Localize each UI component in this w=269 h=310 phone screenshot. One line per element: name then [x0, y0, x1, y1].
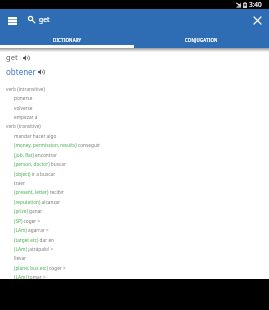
staticText: ponerse [14, 95, 33, 101]
button[interactable]: Search [24, 12, 38, 26]
button[interactable]: CONJUGATION [134, 31, 269, 48]
button[interactable]: (object) ir a buscar [0, 171, 269, 180]
button[interactable]: (plane, bus etc) coger > [0, 265, 269, 274]
button[interactable]: (LAm) agarrar > [0, 227, 269, 236]
button[interactable]: mandar hacer algo [0, 133, 269, 142]
staticText: (object) ir a buscar [14, 171, 56, 177]
button[interactable]: (reputation) alcanzar [0, 199, 269, 208]
staticText: (LAm) tomar > [14, 274, 46, 280]
button[interactable]: (money, permission, results) conseguir [0, 142, 269, 151]
staticText: verb (intransitive) [6, 86, 45, 92]
staticText: (reputation) alcanzar [14, 199, 61, 205]
staticText: mandar hacer algo [14, 133, 57, 139]
button[interactable]: (job, flat) encontrar [0, 152, 269, 161]
button[interactable]: (LAm) tomar > [0, 274, 269, 283]
button[interactable]: Clear search [249, 12, 265, 28]
staticText: get [39, 15, 50, 24]
button[interactable]: (LAm) ¡atrápalo! > [0, 246, 269, 255]
staticText: (prize) ganar [14, 208, 43, 214]
button[interactable]: (person, doctor) buscar [0, 161, 269, 170]
staticText: (plane, bus etc) coger > [14, 265, 66, 271]
staticText: verb (transitive) [6, 123, 41, 129]
staticText: CONJUGATION [185, 37, 218, 43]
staticText: (LAm) ¡atrápalo! > [14, 246, 54, 252]
staticText: (target etc) dar en [14, 237, 54, 243]
button[interactable]: DICTIONARY [0, 31, 134, 48]
button[interactable]: verb (intransitive) [0, 86, 269, 95]
button[interactable]: llevar [0, 255, 269, 264]
button[interactable]: (present, letter) recibir [0, 189, 269, 198]
staticText: (SP) coger > [14, 218, 41, 224]
button[interactable]: Pronounce obtener [2, 64, 32, 77]
button[interactable]: Pronounce get [2, 50, 14, 63]
staticText: 3:40 [249, 0, 262, 9]
button[interactable]: (prize) ganar [0, 208, 269, 217]
button[interactable]: traer [0, 180, 269, 189]
button[interactable]: (SP) coger > [0, 218, 269, 227]
staticText: (job, flat) encontrar [14, 152, 57, 158]
button[interactable]: verb (transitive) [0, 123, 269, 132]
staticText: obtener [6, 66, 36, 77]
staticText: get [6, 52, 18, 62]
button[interactable]: empezar a [0, 114, 269, 123]
staticText: (present, letter) recibir [14, 189, 64, 195]
staticText: empezar a [14, 114, 38, 120]
button[interactable]: volverse [0, 105, 269, 114]
staticText: llevar [14, 255, 27, 261]
button[interactable]: Open navigation drawer [4, 13, 20, 29]
button[interactable]: (target etc) dar en [0, 237, 269, 246]
staticText: DICTIONARY [53, 37, 82, 43]
staticText: traer [14, 180, 25, 186]
staticText: (money, permission, results) conseguir [14, 142, 101, 148]
staticText: (LAm) agarrar > [14, 227, 49, 233]
staticText: (person, doctor) buscar [14, 161, 66, 167]
button[interactable]: ponerse [0, 95, 269, 104]
staticText: volverse [14, 105, 33, 111]
